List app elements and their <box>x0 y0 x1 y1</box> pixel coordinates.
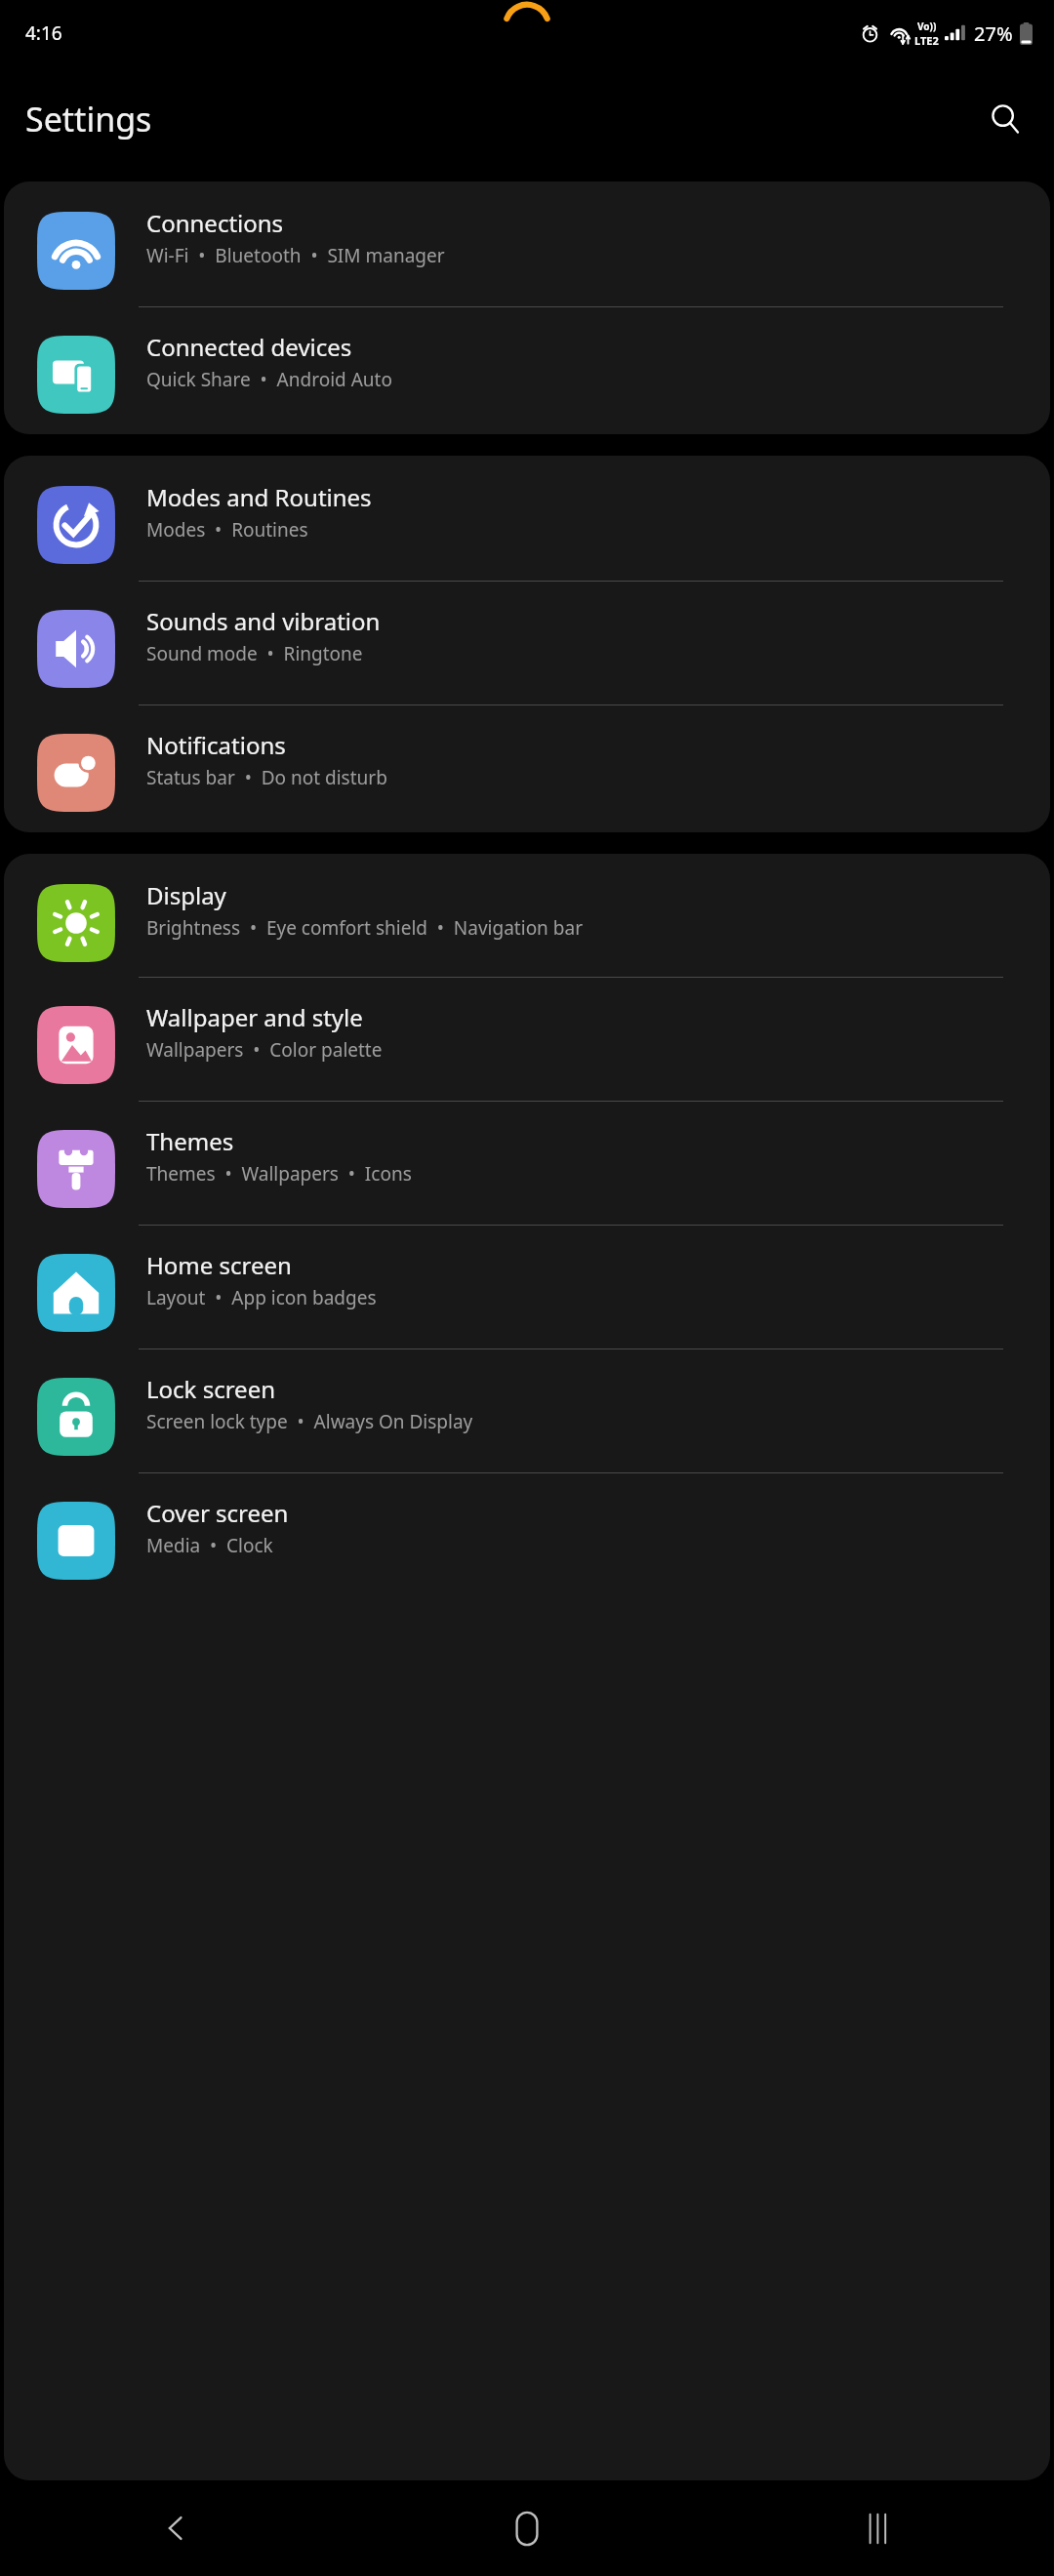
staticText: 27% <box>974 20 1013 47</box>
staticText: Vo)) <box>917 20 937 33</box>
staticText: Sound mode • Ringtone <box>146 641 363 666</box>
staticText: Status bar • Do not disturb <box>146 765 387 790</box>
staticText: Wi-Fi • Bluetooth • SIM manager <box>146 243 445 268</box>
button[interactable]: Cover screen <box>4 1473 1050 1600</box>
button[interactable]: Recents <box>703 2480 1054 2576</box>
button[interactable]: Home <box>351 2480 703 2576</box>
button[interactable]: Lock screen <box>4 1349 1050 1472</box>
button[interactable]: Home screen <box>4 1226 1050 1348</box>
staticText: Modes • Routines <box>146 517 308 543</box>
button[interactable]: Connected devices <box>4 307 1050 434</box>
staticText: Brightness • Eye comfort shield • Naviga… <box>146 915 583 941</box>
staticText: Sounds and vibration <box>146 605 381 637</box>
button[interactable]: Notifications <box>4 705 1050 832</box>
staticText: 4:16 <box>25 20 62 46</box>
button[interactable]: Search <box>978 92 1033 146</box>
staticText: Lock screen <box>146 1373 276 1405</box>
button[interactable]: Display <box>4 854 1050 977</box>
staticText: Home screen <box>146 1249 292 1281</box>
staticText: Connections <box>146 207 284 239</box>
staticText: Themes • Wallpapers • Icons <box>146 1161 412 1187</box>
staticText: Screen lock type • Always On Display <box>146 1409 473 1434</box>
staticText: Display <box>146 879 226 911</box>
staticText: Wallpapers • Color palette <box>146 1037 383 1063</box>
button[interactable]: Back <box>0 2480 351 2576</box>
staticText: Settings <box>25 97 152 141</box>
staticText: Media • Clock <box>146 1533 273 1558</box>
button[interactable]: Modes and Routines <box>4 456 1050 581</box>
button[interactable]: Sounds and vibration <box>4 582 1050 704</box>
staticText: Layout • App icon badges <box>146 1285 377 1310</box>
staticText: Wallpaper and style <box>146 1001 363 1033</box>
staticText: LTE2 <box>914 33 939 48</box>
staticText: Connected devices <box>146 331 352 363</box>
staticText: Themes <box>146 1125 234 1157</box>
button[interactable]: Connections <box>4 181 1050 306</box>
staticText: Notifications <box>146 729 286 761</box>
button[interactable]: Wallpaper and style <box>4 978 1050 1101</box>
staticText: Quick Share • Android Auto <box>146 367 392 392</box>
staticText: Cover screen <box>146 1497 289 1529</box>
staticText: Modes and Routines <box>146 481 372 513</box>
button[interactable]: Themes <box>4 1102 1050 1225</box>
